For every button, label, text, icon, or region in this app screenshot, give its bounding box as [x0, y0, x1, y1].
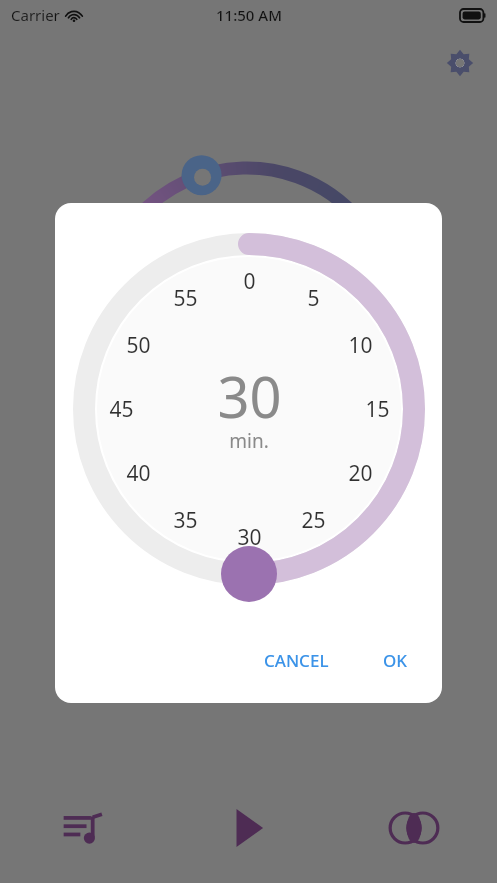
staticText: 25	[301, 506, 326, 535]
staticText: 35	[173, 506, 198, 535]
button[interactable]: Playlist	[0, 788, 165, 868]
button[interactable]: Settings	[437, 40, 483, 86]
staticText: min.	[229, 428, 269, 454]
button[interactable]: Play	[165, 788, 331, 868]
staticText: OK	[383, 649, 408, 672]
button[interactable]: OK	[371, 640, 420, 681]
button[interactable]: Crossfade	[331, 788, 497, 868]
staticText: 0	[243, 267, 256, 296]
staticText: 15	[365, 395, 390, 424]
staticText: 40	[126, 459, 151, 488]
staticText: 50	[126, 331, 151, 360]
staticText: 45	[109, 395, 134, 424]
staticText: 10	[348, 331, 373, 360]
staticText: CANCEL	[264, 649, 329, 672]
staticText: Carrier	[11, 5, 60, 25]
staticText: 20	[348, 459, 373, 488]
staticText: 11:50 AM	[216, 5, 282, 25]
staticText: 55	[173, 284, 198, 313]
staticText: 30	[217, 358, 282, 434]
staticText: 30	[237, 523, 262, 552]
button[interactable]: CANCEL	[252, 640, 341, 681]
staticText: 5	[307, 284, 320, 313]
